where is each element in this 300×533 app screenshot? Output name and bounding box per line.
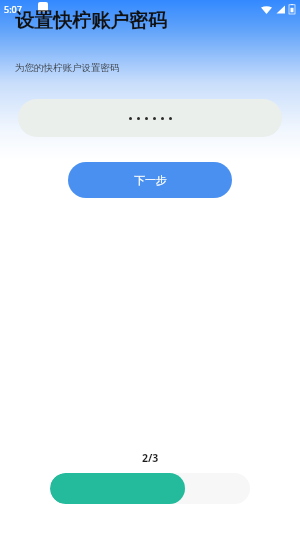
staticText: 下一步	[134, 173, 167, 187]
button[interactable]: 下一步	[68, 162, 232, 198]
staticText: 为您的快柠账户设置密码	[15, 62, 120, 74]
staticText: 设置快柠账户密码	[15, 9, 167, 33]
staticText: 5:07	[4, 3, 22, 15]
button[interactable]	[18, 99, 282, 137]
staticText: 2/3	[142, 451, 159, 465]
